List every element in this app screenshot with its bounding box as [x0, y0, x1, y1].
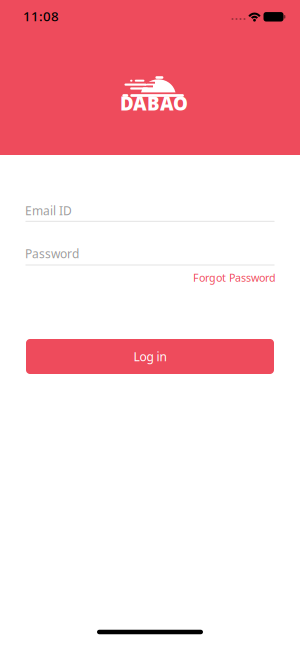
button[interactable]: Email ID [25, 202, 274, 222]
button[interactable]: Forgot Password [193, 270, 276, 285]
button[interactable]: Log in [26, 339, 274, 374]
staticText: 11:08 [23, 7, 59, 25]
staticText: DABAO [120, 91, 188, 116]
staticText: Password [25, 245, 79, 261]
staticText: Forgot Password [193, 270, 276, 285]
button[interactable]: Password [25, 246, 274, 266]
staticText: Email ID [25, 202, 72, 218]
staticText: Log in [133, 348, 166, 364]
